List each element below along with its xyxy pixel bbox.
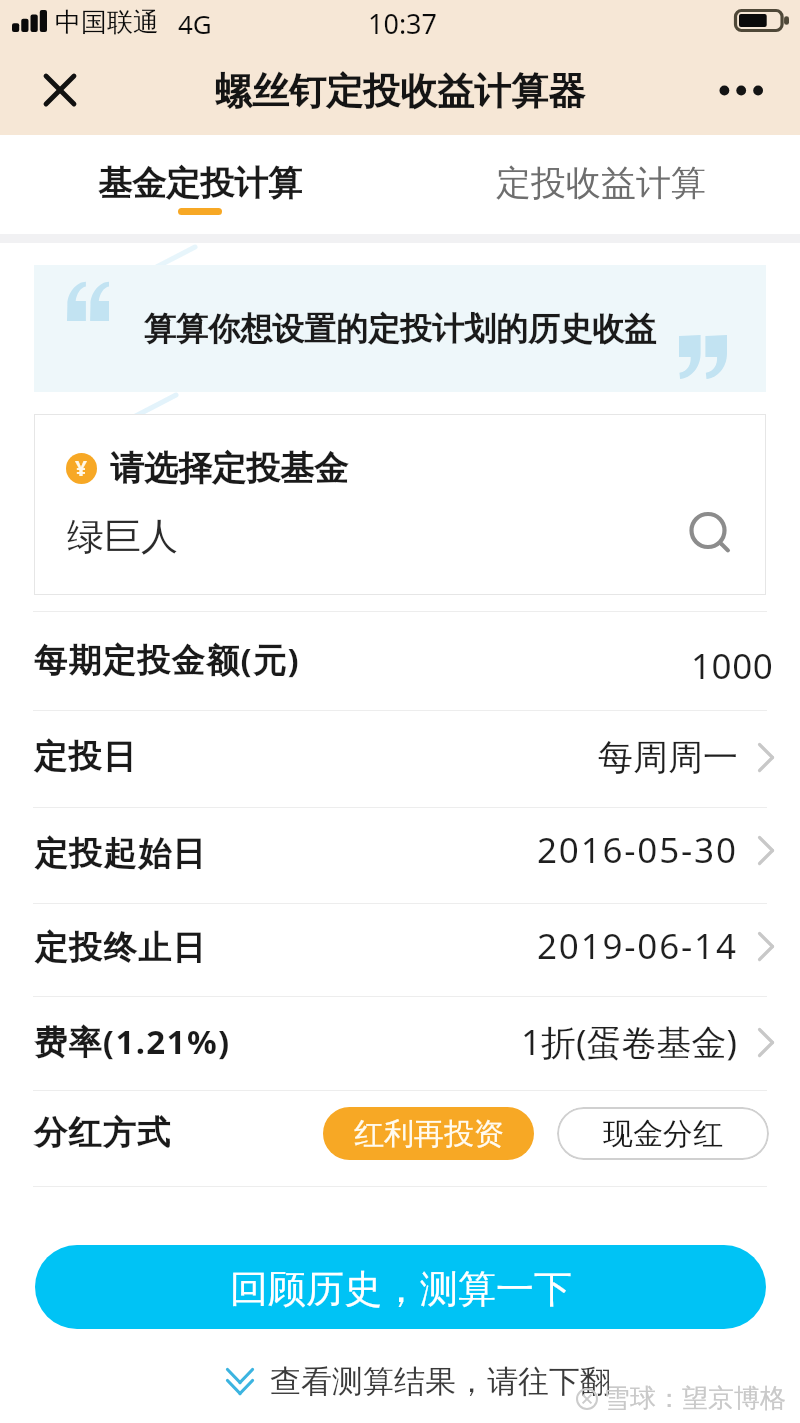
button[interactable]: 红利再投资 — [323, 1107, 534, 1160]
staticText: 现金分红 — [603, 1115, 723, 1153]
staticText: 基金定投计算 — [98, 162, 302, 205]
button[interactable]: 现金分红 — [557, 1107, 769, 1160]
staticText: 4G — [178, 6, 212, 41]
button[interactable]: 基金定投计算 — [0, 135, 400, 234]
staticText: 定投日 — [34, 736, 138, 778]
staticText: ¥ — [75, 454, 88, 483]
button[interactable]: 回顾历史，测算一下 — [35, 1245, 766, 1329]
staticText: 定投收益计算 — [496, 161, 706, 205]
button[interactable]: Close — [36, 66, 84, 114]
button[interactable]: 定投终止日 — [0, 904, 800, 996]
staticText: 分红方式 — [34, 1112, 172, 1154]
staticText: 2019-06-14 — [537, 922, 738, 970]
button[interactable]: 费率(1.21%) — [0, 997, 800, 1090]
staticText: 每周周一 — [598, 735, 738, 779]
staticText: 费率(1.21%) — [34, 1019, 231, 1064]
staticText: 回顾历史，测算一下 — [230, 1265, 572, 1313]
staticText: 雪球：望京博格 — [604, 1382, 786, 1415]
staticText: 红利再投资 — [354, 1115, 504, 1153]
staticText: 绿巨人 — [67, 513, 178, 560]
button[interactable]: 定投收益计算 — [400, 135, 800, 234]
staticText: 定投终止日 — [34, 927, 206, 969]
staticText: 定投起始日 — [34, 833, 206, 875]
staticText: 1000 — [691, 642, 774, 690]
staticText: 中国联通 — [55, 6, 159, 39]
staticText: 2016-05-30 — [537, 826, 738, 874]
button[interactable]: 定投起始日 — [0, 808, 800, 903]
staticText: 螺丝钉定投收益计算器 — [215, 68, 585, 115]
staticText: 算算你想设置的定投计划的历史收益 — [144, 309, 656, 349]
button[interactable]: ¥ — [34, 414, 766, 595]
button[interactable]: 每期定投金额(元) — [0, 612, 800, 710]
button[interactable]: More options — [713, 66, 771, 114]
button[interactable]: 定投日 — [0, 711, 800, 807]
staticText: 每期定投金额(元) — [34, 637, 300, 682]
staticText: 10:37 — [368, 5, 438, 42]
staticText: 查看测算结果，请往下翻 — [270, 1362, 611, 1401]
staticText: 请选择定投基金 — [110, 447, 348, 490]
staticText: 1折(蛋卷基金) — [521, 1018, 738, 1066]
